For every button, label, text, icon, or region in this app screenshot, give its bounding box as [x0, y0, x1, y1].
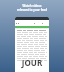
staticText: JOUR [15, 57, 49, 68]
staticText: Watch videos relevant to your feed [0, 4, 64, 12]
